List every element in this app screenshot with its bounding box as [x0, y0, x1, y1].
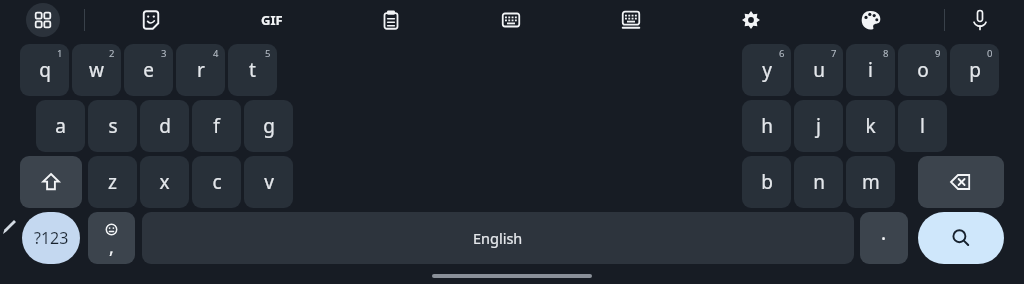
button[interactable]: ?123: [22, 212, 80, 264]
button[interactable]: t: [228, 44, 277, 96]
staticText: v: [264, 169, 274, 195]
staticText: b: [761, 169, 773, 195]
staticText: e: [143, 57, 154, 83]
button[interactable]: Emoji and comma: [88, 212, 135, 264]
staticText: n: [813, 169, 825, 195]
staticText: 2: [109, 47, 115, 60]
button[interactable]: y: [742, 44, 791, 96]
staticText: w: [89, 57, 104, 83]
staticText: k: [865, 113, 876, 139]
button[interactable]: g: [244, 100, 293, 152]
button[interactable]: Toolbar menu: [26, 3, 60, 37]
staticText: q: [39, 57, 51, 83]
button[interactable]: f: [192, 100, 241, 152]
staticText: .: [881, 220, 887, 246]
button[interactable]: h: [742, 100, 791, 152]
button[interactable]: m: [846, 156, 895, 208]
staticText: d: [159, 113, 171, 139]
button[interactable]: j: [794, 100, 843, 152]
staticText: h: [761, 113, 773, 139]
staticText: u: [813, 57, 825, 83]
staticText: x: [159, 169, 170, 195]
button[interactable]: z: [88, 156, 137, 208]
button[interactable]: d: [140, 100, 189, 152]
button[interactable]: v: [244, 156, 293, 208]
button[interactable]: e: [124, 44, 173, 96]
staticText: z: [108, 169, 117, 195]
button[interactable]: p: [950, 44, 999, 96]
staticText: 3: [161, 47, 167, 60]
staticText: f: [213, 113, 220, 139]
button[interactable]: c: [192, 156, 241, 208]
button[interactable]: l: [898, 100, 947, 152]
button[interactable]: n: [794, 156, 843, 208]
staticText: j: [816, 113, 821, 139]
button[interactable]: GIF: [256, 8, 288, 32]
staticText: 1: [57, 47, 63, 60]
button[interactable]: x: [140, 156, 189, 208]
staticText: 4: [213, 47, 219, 60]
staticText: English: [473, 228, 523, 248]
staticText: 6: [779, 47, 785, 60]
button[interactable]: u: [794, 44, 843, 96]
staticText: 0: [987, 47, 993, 60]
button[interactable]: Search: [918, 212, 1004, 264]
button[interactable]: o: [898, 44, 947, 96]
button[interactable]: b: [742, 156, 791, 208]
staticText: g: [263, 113, 275, 139]
staticText: s: [108, 113, 118, 139]
staticText: o: [917, 57, 929, 83]
staticText: p: [969, 57, 981, 83]
staticText: i: [868, 57, 873, 83]
button[interactable]: Settings: [734, 3, 768, 37]
button[interactable]: One-handed mode: [614, 3, 648, 37]
staticText: 7: [831, 47, 837, 60]
button[interactable]: Voice input: [963, 3, 997, 37]
button[interactable]: English: [142, 212, 854, 264]
button[interactable]: Handwriting: [0, 214, 22, 240]
button[interactable]: Stickers: [134, 3, 168, 37]
button[interactable]: r: [176, 44, 225, 96]
staticText: 9: [935, 47, 941, 60]
button[interactable]: Shift: [20, 156, 82, 208]
button[interactable]: Backspace: [918, 156, 1004, 208]
button[interactable]: s: [88, 100, 137, 152]
staticText: 8: [883, 47, 889, 60]
button[interactable]: Keyboard modes: [494, 3, 528, 37]
staticText: t: [249, 57, 256, 83]
staticText: ?123: [34, 227, 69, 249]
staticText: y: [762, 57, 772, 83]
button[interactable]: Clipboard: [374, 3, 408, 37]
button[interactable]: k: [846, 100, 895, 152]
staticText: c: [212, 169, 222, 195]
staticText: a: [55, 113, 66, 139]
button[interactable]: a: [36, 100, 85, 152]
staticText: ,: [109, 235, 114, 260]
staticText: 5: [265, 47, 271, 60]
button[interactable]: .: [860, 212, 908, 264]
button[interactable]: q: [20, 44, 69, 96]
button[interactable]: Themes: [854, 3, 888, 37]
staticText: GIF: [261, 11, 283, 29]
button[interactable]: i: [846, 44, 895, 96]
staticText: m: [862, 169, 880, 195]
staticText: l: [920, 113, 925, 139]
staticText: r: [197, 57, 205, 83]
button[interactable]: w: [72, 44, 121, 96]
